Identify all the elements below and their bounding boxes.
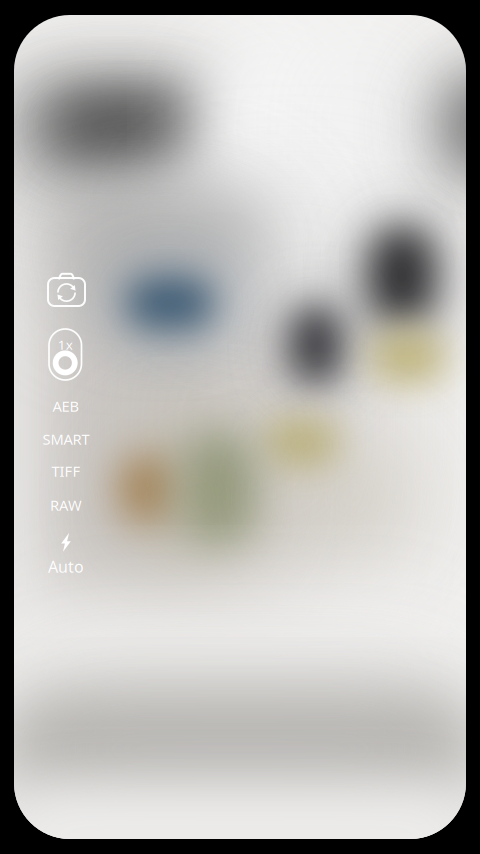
button[interactable]: Flip camera (47, 273, 86, 307)
button[interactable]: RAW (26, 489, 106, 521)
button[interactable]: Flash auto (26, 533, 106, 577)
button[interactable]: SMART (26, 423, 106, 455)
button[interactable]: TIFF (26, 455, 106, 487)
button[interactable]: 1x zoom (48, 327, 82, 380)
staticText: TIFF (51, 461, 80, 481)
button[interactable]: AEB (26, 390, 106, 422)
staticText: Auto (48, 556, 84, 577)
staticText: RAW (50, 495, 82, 515)
staticText: SMART (42, 429, 89, 449)
staticText: 1x (58, 336, 73, 353)
staticText: AEB (52, 396, 79, 416)
